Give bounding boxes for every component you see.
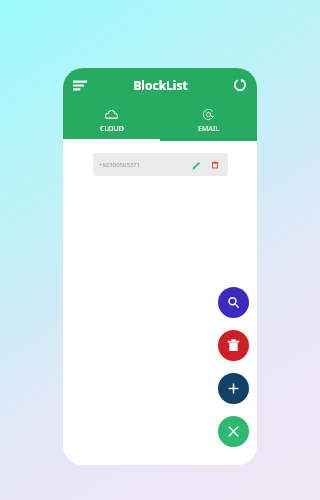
- staticText: +92300505371: [99, 161, 141, 169]
- button[interactable]: CLOUD: [63, 101, 160, 141]
- button[interactable]: Search: [218, 287, 249, 318]
- button[interactable]: Menu: [69, 74, 91, 96]
- button[interactable]: Delete: [208, 158, 222, 172]
- button[interactable]: Refresh: [230, 75, 250, 95]
- staticText: BlockList: [133, 77, 188, 93]
- button[interactable]: Edit: [189, 158, 203, 172]
- button[interactable]: EMAIL: [160, 101, 257, 141]
- button[interactable]: Close: [218, 416, 249, 447]
- button[interactable]: Add: [218, 373, 249, 404]
- staticText: EMAIL: [198, 124, 220, 134]
- staticText: CLOUD: [100, 124, 124, 134]
- button[interactable]: +92300505371: [93, 153, 228, 176]
- button[interactable]: Delete all: [218, 330, 249, 361]
